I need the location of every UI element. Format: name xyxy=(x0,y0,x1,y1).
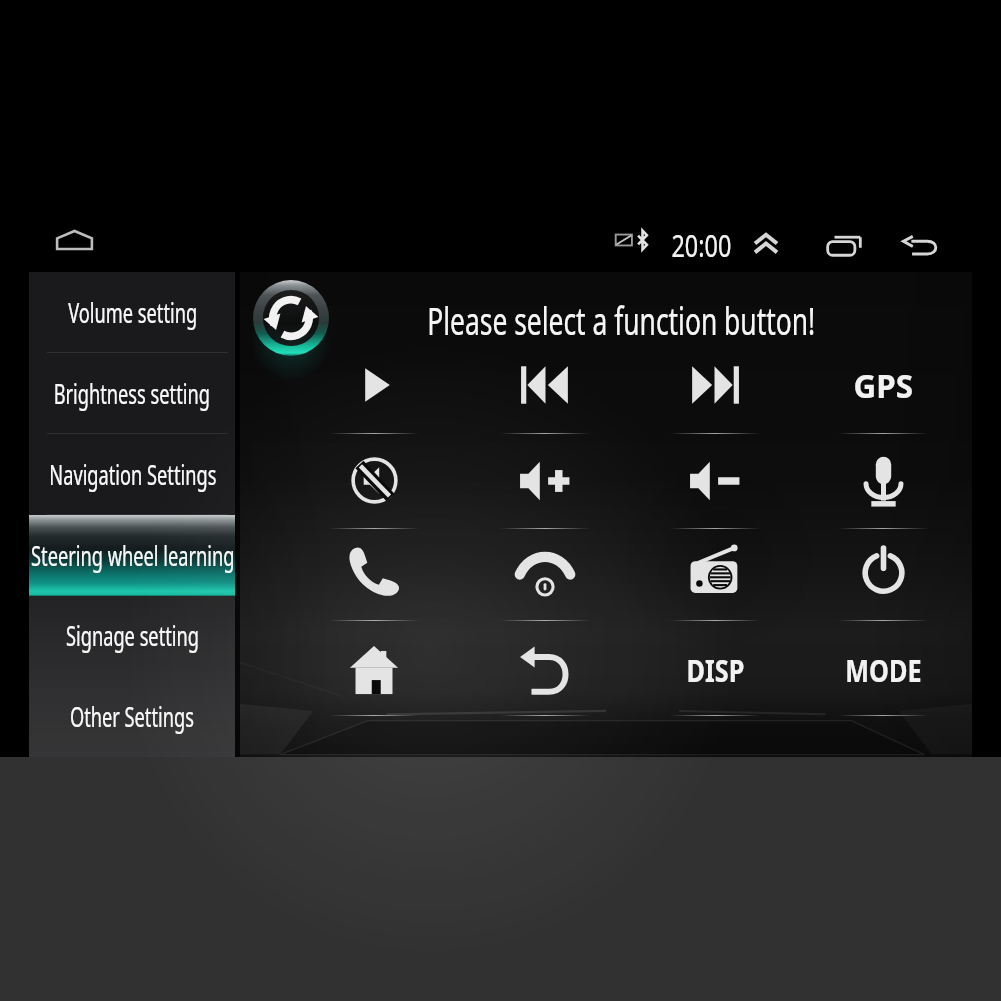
button[interactable]: Navigation Settings xyxy=(29,434,235,515)
staticText: MODE xyxy=(845,650,922,691)
button[interactable]: Volume setting xyxy=(29,272,235,353)
button[interactable]: End call xyxy=(461,526,629,614)
button[interactable]: Home xyxy=(290,625,458,715)
button[interactable]: Back xyxy=(461,625,629,715)
button[interactable]: Other Settings xyxy=(29,676,235,757)
button[interactable]: Steering wheel learning xyxy=(29,515,235,596)
button[interactable]: Mode xyxy=(799,625,967,715)
staticText: DISP xyxy=(686,650,744,691)
button[interactable]: Radio xyxy=(631,526,799,614)
staticText: GPS xyxy=(854,363,913,408)
button[interactable]: Brightness setting xyxy=(29,353,235,434)
button[interactable]: GPS xyxy=(799,338,967,432)
staticText: Navigation Settings xyxy=(49,456,217,493)
staticText: Volume setting xyxy=(68,294,198,331)
staticText: Signage setting xyxy=(66,617,199,654)
staticText: 20:00 xyxy=(671,225,732,257)
button[interactable]: Volume up xyxy=(461,432,629,529)
button[interactable]: Home xyxy=(45,215,103,265)
button[interactable]: Voice command xyxy=(799,432,967,529)
button[interactable]: Volume down xyxy=(631,432,799,529)
button[interactable]: Signage setting xyxy=(29,595,235,676)
button[interactable]: Expand up xyxy=(744,222,788,266)
button[interactable]: Mute xyxy=(290,432,458,529)
staticText: Other Settings xyxy=(70,698,194,735)
button[interactable]: Previous track xyxy=(461,338,629,432)
button[interactable]: Back xyxy=(894,220,946,272)
button[interactable]: Play xyxy=(290,338,458,432)
staticText: Steering wheel learning xyxy=(31,537,235,574)
staticText: Please select a function button! xyxy=(427,294,816,346)
button[interactable]: Display xyxy=(631,625,799,715)
button[interactable]: Power xyxy=(799,526,967,614)
button[interactable]: Recent apps xyxy=(818,220,870,272)
button[interactable]: Next track xyxy=(631,338,799,432)
staticText: Brightness setting xyxy=(54,375,210,412)
button[interactable]: Refresh xyxy=(249,276,333,360)
button[interactable]: Answer call xyxy=(290,526,458,614)
